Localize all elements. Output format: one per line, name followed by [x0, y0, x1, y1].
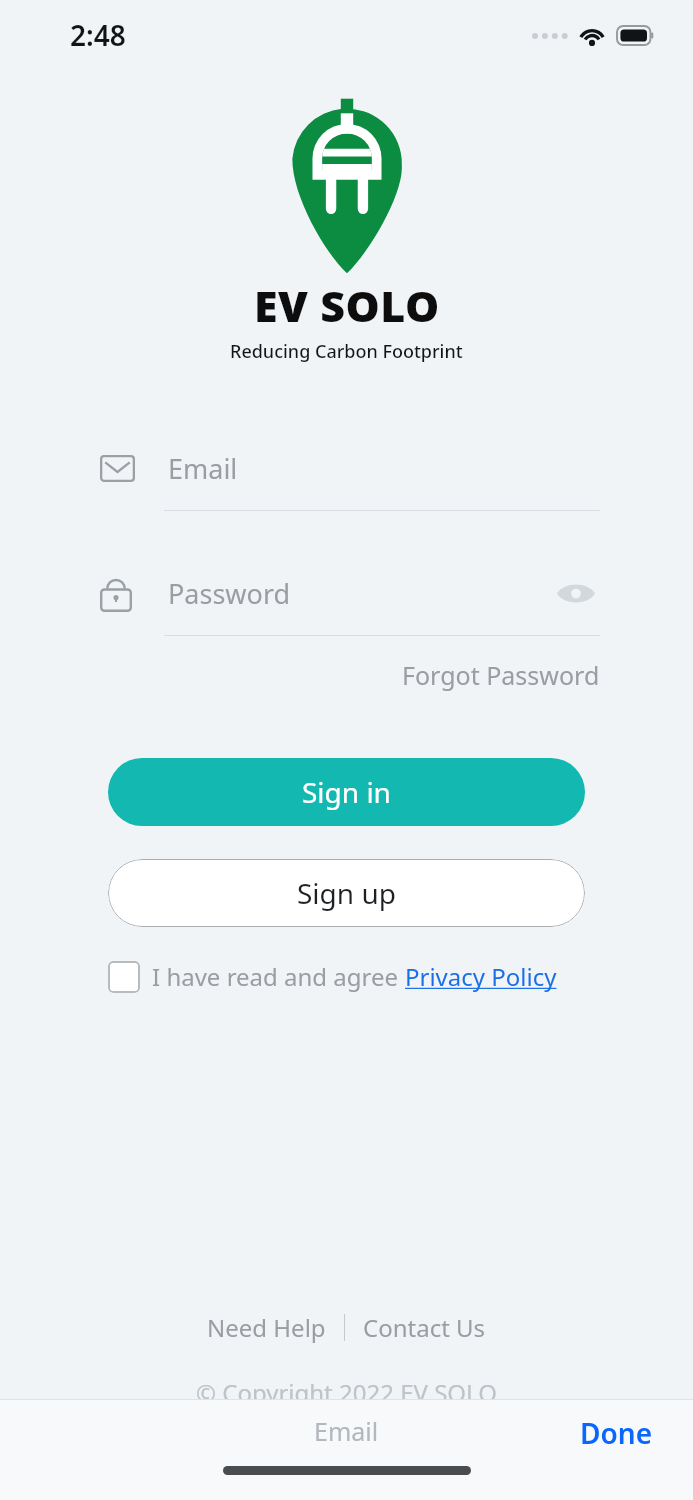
staticText: EV SOLO — [254, 276, 440, 335]
staticText: Email — [168, 450, 600, 487]
button[interactable]: Privacy Policy — [405, 960, 557, 993]
staticText: Sign in — [302, 773, 391, 811]
staticText: Need Help — [207, 1311, 326, 1344]
button[interactable]: Forgot Password — [398, 650, 604, 700]
staticText: Done — [580, 1414, 653, 1452]
button[interactable]: Done — [576, 1410, 657, 1456]
staticText: Sign up — [297, 874, 396, 912]
button[interactable]: Sign in — [108, 758, 585, 826]
staticText: Reducing Carbon Footprint — [230, 339, 463, 364]
button[interactable]: Agree to Privacy Policy — [108, 961, 140, 993]
staticText: I have read and agree — [152, 960, 405, 993]
staticText: Forgot Password — [402, 658, 600, 692]
button[interactable]: Sign up — [108, 859, 585, 927]
button[interactable]: Contact Us — [357, 1307, 492, 1348]
staticText: Email — [314, 1414, 379, 1448]
staticText: Privacy Policy — [405, 960, 557, 993]
staticText: Contact Us — [363, 1311, 486, 1344]
button[interactable]: Show password — [552, 571, 600, 615]
staticText: Password — [168, 575, 552, 612]
staticText: © Copyright 2022 EV SOLO — [196, 1376, 497, 1399]
staticText: 2:48 — [70, 16, 126, 54]
button[interactable]: Need Help — [201, 1307, 332, 1348]
